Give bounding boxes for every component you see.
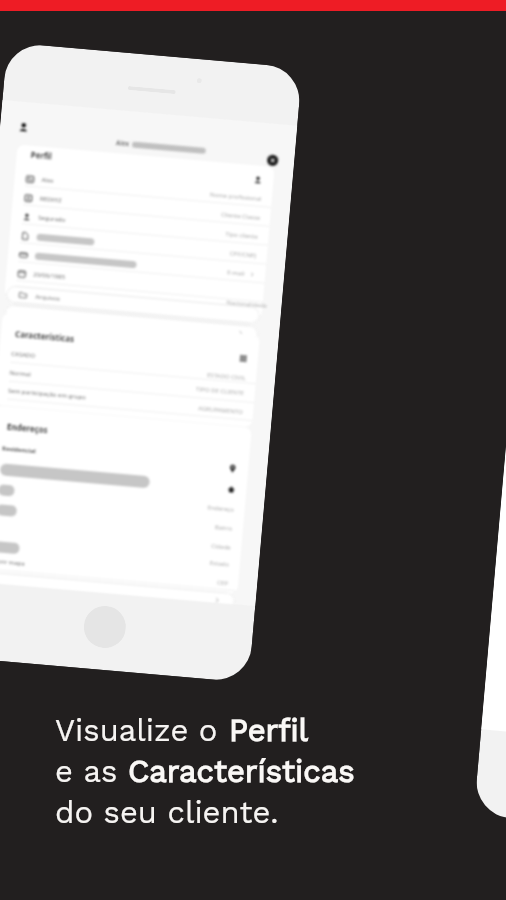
button[interactable]: Perfil do usuário: [15, 119, 31, 135]
staticText: AGRUPAMENTO: [198, 404, 243, 416]
button[interactable]: Arquivos: [6, 285, 260, 324]
staticText: Tipo cliente: [225, 230, 259, 241]
button[interactable]: Perfil: [4, 144, 275, 318]
staticText: Arquivos: [35, 293, 61, 303]
staticText: Endereço: [207, 503, 235, 514]
staticText: Alex: [41, 176, 54, 185]
staticText: do seu cliente.: [55, 794, 279, 830]
button[interactable]: [0, 571, 235, 610]
staticText: CPF/CNPJ: [229, 249, 257, 260]
staticText: REDXYZ: [40, 195, 62, 205]
staticText: Perfil: [229, 712, 309, 748]
staticText: Residencial: [2, 444, 36, 455]
staticText: ESTADO CIVIL: [207, 371, 246, 382]
staticText: Bairro: [215, 523, 233, 533]
staticText: Visualize o: [55, 712, 229, 748]
staticText: 20/06/1985: [33, 270, 66, 281]
staticText: Perfil: [30, 149, 53, 162]
staticText: TIPO DE CLIENTE: [196, 385, 245, 397]
staticText: Nacionalidade: [226, 298, 268, 310]
staticText: Nome profissional: [210, 190, 262, 203]
staticText: Normal: [9, 369, 32, 379]
staticText: Cidade: [211, 542, 232, 552]
staticText: e as: [55, 753, 128, 789]
button[interactable]: Endereços: [0, 405, 252, 593]
button[interactable]: Características: [0, 313, 260, 427]
staticText: Sem participação em grupo: [8, 387, 86, 401]
staticText: E-mail: [227, 268, 245, 278]
button[interactable]: Fechar: [266, 153, 279, 166]
staticText: CASADO: [11, 350, 36, 360]
staticText: CEP: [217, 579, 228, 587]
staticText: Abrir mapa: [0, 557, 25, 568]
button[interactable]: [4, 304, 259, 343]
staticText: Características: [15, 328, 75, 344]
staticText: Alex: [116, 138, 130, 148]
staticText: Características: [128, 753, 355, 789]
staticText: Estado: [209, 559, 230, 569]
staticText: Segurado: [38, 214, 66, 224]
staticText: Endereços: [6, 421, 48, 435]
staticText: Cliente Classe: [221, 211, 260, 222]
